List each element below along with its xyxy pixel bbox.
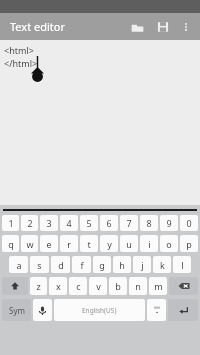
- button[interactable]: 6: [100, 215, 118, 231]
- staticText: j: [141, 259, 144, 271]
- staticText: Sym: [9, 305, 25, 316]
- staticText: q: [8, 238, 14, 250]
- button[interactable]: Enter: [168, 299, 198, 321]
- button[interactable]: j: [133, 256, 151, 273]
- staticText: a: [16, 259, 22, 271]
- staticText: h: [119, 259, 125, 271]
- staticText: l: [181, 259, 184, 271]
- staticText: s: [37, 259, 42, 271]
- staticText: 7: [126, 217, 132, 229]
- staticText: t: [87, 238, 91, 250]
- staticText: English(US): [82, 306, 117, 315]
- staticText: i: [148, 238, 151, 250]
- button[interactable]: o: [160, 235, 178, 252]
- button[interactable]: p: [180, 235, 198, 252]
- staticText: f: [80, 259, 84, 271]
- staticText: Text editor: [10, 19, 65, 34]
- button[interactable]: 8: [140, 215, 158, 231]
- staticText: 8: [146, 217, 152, 229]
- button[interactable]: h: [113, 256, 131, 273]
- button[interactable]: More options: [176, 17, 196, 37]
- button[interactable]: 4: [60, 215, 78, 231]
- button[interactable]: Sym: [2, 299, 31, 321]
- staticText: p: [186, 238, 192, 250]
- staticText: e: [46, 238, 52, 250]
- staticText: w: [26, 238, 34, 250]
- staticText: r: [67, 238, 71, 250]
- button[interactable]: d: [51, 256, 70, 273]
- button[interactable]: Shift: [2, 277, 28, 295]
- staticText: b: [115, 280, 121, 292]
- button[interactable]: 5: [80, 215, 98, 231]
- button[interactable]: r: [60, 235, 78, 252]
- staticText: g: [99, 259, 105, 271]
- button[interactable]: f: [72, 256, 91, 273]
- staticText: 5: [86, 217, 92, 229]
- staticText: 2: [27, 217, 33, 229]
- button[interactable]: y: [100, 235, 118, 252]
- button[interactable]: c: [69, 277, 87, 295]
- button[interactable]: 2: [21, 215, 38, 231]
- button[interactable]: i: [140, 235, 158, 252]
- staticText: v: [96, 280, 101, 292]
- button[interactable]: w: [21, 235, 38, 252]
- button[interactable]: 1: [2, 215, 19, 231]
- staticText: k: [160, 259, 165, 271]
- button[interactable]: a: [9, 256, 28, 273]
- button[interactable]: s: [30, 256, 49, 273]
- staticText: <html>: [4, 44, 34, 56]
- staticText: 6: [106, 217, 112, 229]
- button[interactable]: 9: [160, 215, 178, 231]
- staticText: </html>: [4, 57, 38, 69]
- button[interactable]: k: [153, 256, 171, 273]
- button[interactable]: Punctuation: [147, 299, 166, 321]
- button[interactable]: English(US): [54, 299, 145, 321]
- button[interactable]: 3: [40, 215, 58, 231]
- staticText: 1: [8, 217, 14, 229]
- button[interactable]: Backspace: [169, 277, 198, 295]
- button[interactable]: b: [109, 277, 127, 295]
- staticText: y: [107, 238, 112, 250]
- button[interactable]: x: [49, 277, 67, 295]
- staticText: 9: [166, 217, 172, 229]
- staticText: o: [166, 238, 172, 250]
- staticText: d: [58, 259, 64, 271]
- button[interactable]: q: [2, 235, 19, 252]
- button[interactable]: u: [120, 235, 138, 252]
- staticText: n: [135, 280, 141, 292]
- staticText: 4: [66, 217, 72, 229]
- button[interactable]: 0: [180, 215, 198, 231]
- staticText: x: [56, 280, 61, 292]
- button[interactable]: l: [173, 256, 191, 273]
- staticText: m: [154, 280, 163, 292]
- button[interactable]: 7: [120, 215, 138, 231]
- button[interactable]: g: [93, 256, 111, 273]
- button[interactable]: Open file: [124, 14, 150, 40]
- button[interactable]: v: [89, 277, 107, 295]
- staticText: c: [76, 280, 81, 292]
- staticText: u: [126, 238, 132, 250]
- button[interactable]: n: [129, 277, 147, 295]
- staticText: 0: [186, 217, 192, 229]
- staticText: z: [36, 280, 41, 292]
- button[interactable]: m: [149, 277, 167, 295]
- button[interactable]: Save: [150, 14, 176, 40]
- button[interactable]: t: [80, 235, 98, 252]
- button[interactable]: Voice input: [33, 299, 52, 321]
- staticText: 3: [46, 217, 52, 229]
- button[interactable]: e: [40, 235, 58, 252]
- button[interactable]: z: [30, 277, 47, 295]
